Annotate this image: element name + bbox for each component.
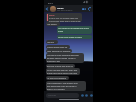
button[interactable]: The Misfits of fat people that is the [57, 26, 92, 34]
button[interactable]: Because is what they gave us [46, 64, 75, 68]
button[interactable]: Message [46, 93, 79, 98]
staticText: Like me [47, 41, 54, 44]
staticText: name [58, 30, 64, 33]
staticText: Olivia [49, 14, 55, 17]
staticText: Not always [47, 23, 57, 26]
staticText: Message [48, 94, 56, 97]
button[interactable]: We have a really stressing work was [46, 53, 84, 63]
button[interactable]: Started being really fat [46, 45, 70, 49]
button[interactable]: Sticker [84, 93, 89, 98]
button[interactable]: Voice message [89, 93, 94, 98]
staticText: Started being really fat [47, 46, 68, 49]
button[interactable]: Attach [80, 93, 85, 98]
staticText: 16 hours just walking [47, 77, 66, 80]
button[interactable]: After working for example [46, 49, 72, 53]
staticText: potatoes a day [47, 60, 61, 63]
button[interactable]: 16 hours just walking [46, 76, 69, 80]
button[interactable]: Video call [81, 5, 87, 12]
staticText: every 2 or 3 months [47, 88, 65, 91]
staticText: We have a really stressing work was [47, 54, 79, 57]
staticText: Because is what they gave us [47, 65, 73, 68]
button[interactable]: Not always [46, 22, 60, 26]
button[interactable]: Olivia [46, 13, 82, 22]
staticText: Well sometimes I had anxiety and I [47, 82, 79, 85]
staticText: Olivia [57, 6, 64, 9]
button[interactable]: Some of my mates at work [57, 35, 92, 39]
button[interactable]: Call [87, 5, 93, 12]
staticText: last seen recently [57, 9, 73, 12]
staticText: In my case was like this and I was [47, 69, 78, 72]
staticText: was eating like crazy but some fu [47, 85, 77, 88]
button[interactable]: Olivia [50, 5, 80, 12]
staticText: Some of my mates at work [58, 36, 82, 39]
button[interactable]: Well sometimes I had anxiety and I [46, 81, 86, 91]
staticText: After working for example [47, 50, 71, 53]
staticText: doing even more sports than now [47, 72, 77, 75]
staticText: 9:41 [48, 1, 53, 4]
staticText: we were selling maybe some fu [47, 57, 76, 60]
button[interactable]: Like me [46, 40, 58, 44]
staticText: in your hair I'm middle aged dad [49, 17, 78, 20]
button[interactable]: Back [44, 5, 49, 12]
button[interactable]: In my case was like this and I was [46, 68, 80, 75]
staticText: old enough open end to more mate [49, 20, 81, 22]
staticText: The Misfits of fat people that is the [58, 27, 89, 30]
